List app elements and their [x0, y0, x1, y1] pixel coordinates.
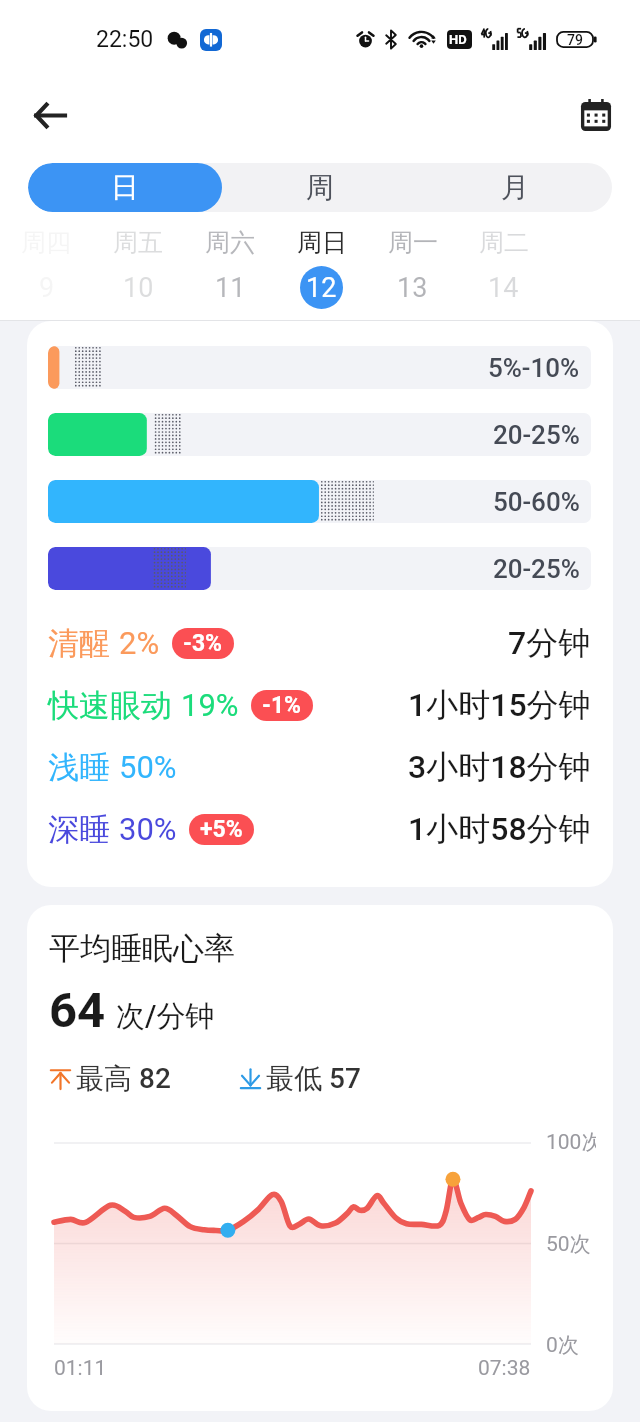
button[interactable]: 周	[222, 163, 417, 212]
staticText: 5%-10%	[488, 353, 580, 383]
staticText: 7分钟	[508, 623, 591, 663]
button[interactable]: 周日	[276, 227, 367, 309]
staticText: 30%	[119, 811, 177, 847]
staticText: 日	[111, 170, 139, 205]
staticText: 79	[567, 32, 583, 48]
staticText: 快速眼动	[48, 686, 172, 725]
staticText: 周四	[21, 227, 71, 258]
button[interactable]: Back	[20, 86, 78, 144]
staticText: 周	[306, 170, 334, 205]
staticText: 22:50	[96, 26, 154, 53]
staticText: 最高 82	[76, 1061, 171, 1096]
staticText: 07:38	[478, 1356, 531, 1381]
staticText: 周一	[388, 227, 438, 258]
staticText: 50次	[546, 1231, 591, 1257]
staticText: +5%	[200, 816, 243, 843]
staticText: 01:11	[54, 1356, 107, 1381]
button[interactable]: Calendar	[569, 88, 623, 142]
staticText: 50-60%	[493, 487, 580, 517]
staticText: 周六	[205, 227, 255, 258]
staticText: 19%	[181, 687, 239, 723]
staticText: 次/分钟	[116, 998, 215, 1035]
staticText: 平均睡眠心率	[49, 929, 235, 968]
staticText: 11	[215, 272, 246, 304]
staticText: 100次	[546, 1129, 596, 1155]
staticText: -3%	[183, 630, 223, 657]
staticText: 周二	[479, 227, 529, 258]
button[interactable]: 月	[417, 163, 612, 212]
button[interactable]: 周六	[184, 227, 276, 309]
staticText: 10	[123, 272, 154, 304]
staticText: 月	[501, 170, 529, 205]
staticText: 浅睡	[48, 748, 110, 787]
staticText: 20-25%	[493, 554, 580, 584]
button[interactable]: 周二	[458, 227, 549, 309]
staticText: 0次	[546, 1332, 579, 1358]
staticText: 清醒	[48, 624, 110, 663]
button[interactable]: 周一	[367, 227, 458, 309]
staticText: 最低 57	[266, 1061, 361, 1096]
staticText: 3小时18分钟	[408, 747, 591, 787]
staticText: 14	[488, 272, 519, 304]
staticText: -1%	[262, 692, 302, 719]
staticText: 1小时58分钟	[408, 809, 591, 849]
staticText: 9	[39, 272, 55, 304]
staticText: 2%	[119, 625, 160, 661]
staticText: 周五	[113, 227, 163, 258]
staticText: 周日	[297, 227, 347, 258]
button[interactable]: 日	[28, 163, 222, 212]
button[interactable]: 周五	[92, 227, 184, 309]
staticText: 12	[306, 272, 337, 304]
staticText: 64	[49, 982, 106, 1039]
staticText: 1小时15分钟	[408, 685, 591, 725]
staticText: 50%	[119, 749, 177, 785]
staticText: 20-25%	[493, 420, 580, 450]
staticText: 13	[397, 272, 428, 304]
staticText: HD	[449, 32, 467, 47]
staticText: 深睡	[48, 810, 110, 849]
